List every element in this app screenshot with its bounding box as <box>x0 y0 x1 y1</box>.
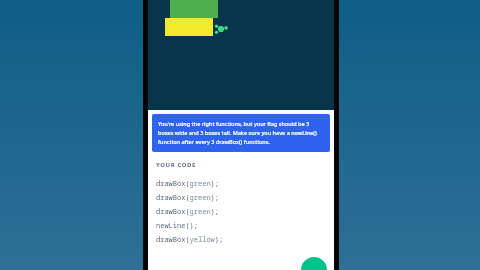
staticText: drawBox(green); <box>156 179 219 189</box>
staticText: YOUR CODE <box>156 161 197 169</box>
button[interactable]: newLine(); <box>148 219 334 233</box>
button[interactable]: Run code <box>301 257 327 270</box>
staticText: You're using the right functions, but yo… <box>158 120 324 146</box>
button[interactable]: drawBox(green); <box>148 191 334 205</box>
button[interactable]: drawBox(green); <box>148 205 334 219</box>
button[interactable]: drawBox(green); <box>148 177 334 191</box>
staticText: drawBox(green); <box>156 207 219 217</box>
staticText: drawBox(yellow); <box>156 235 224 245</box>
button[interactable]: You're using the right functions, but yo… <box>152 114 330 152</box>
button[interactable]: drawBox(yellow); <box>148 233 334 247</box>
staticText: drawBox(green); <box>156 193 219 203</box>
staticText: newLine(); <box>156 221 198 231</box>
